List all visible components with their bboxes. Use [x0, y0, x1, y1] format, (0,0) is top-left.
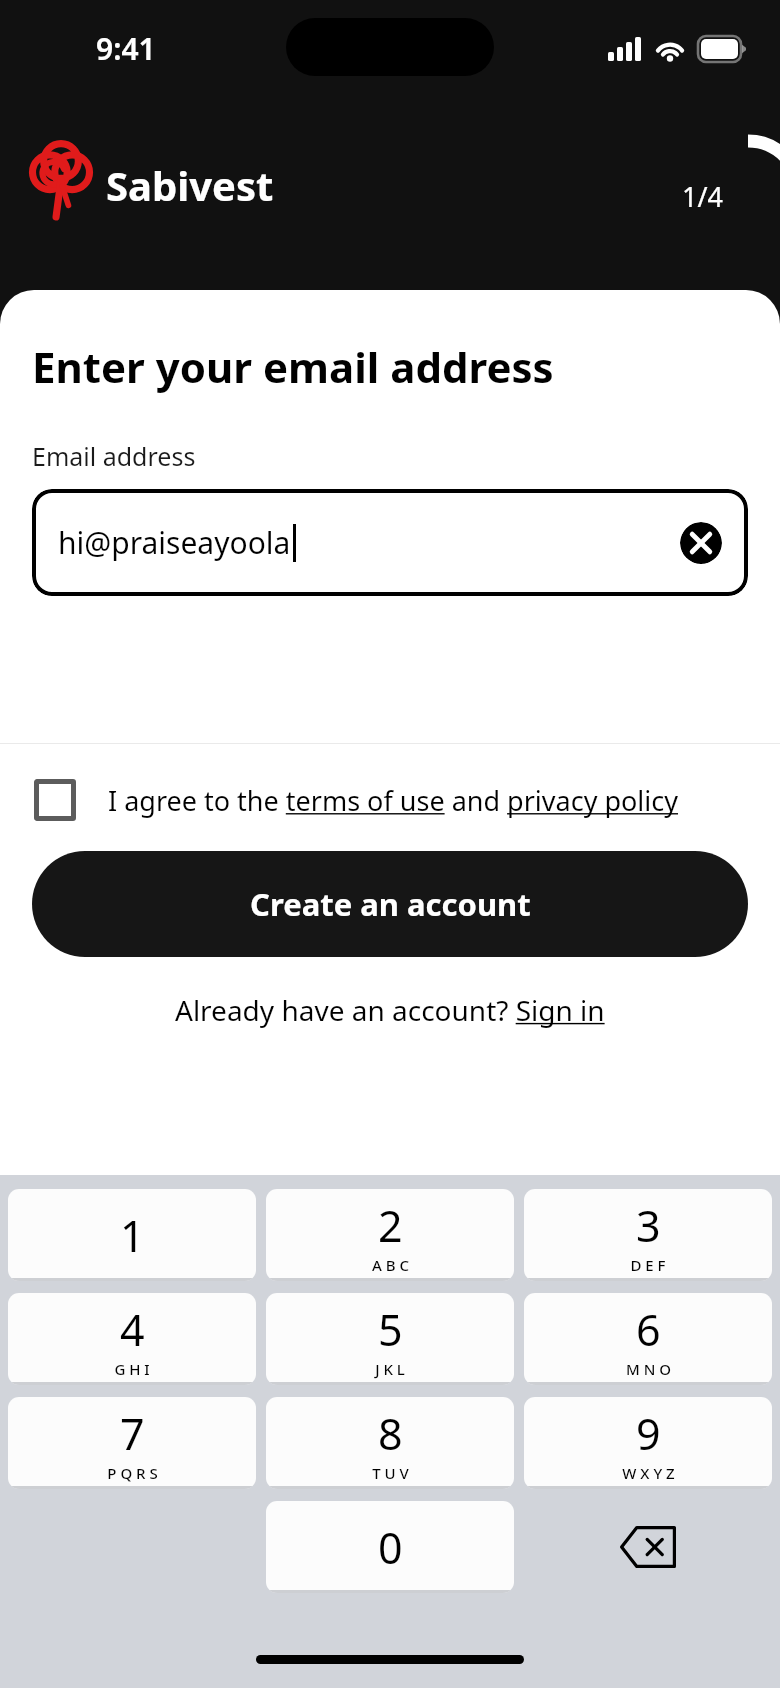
staticText: J K L	[375, 1359, 405, 1379]
button[interactable]: 5	[266, 1293, 514, 1385]
button[interactable]: 9	[524, 1397, 772, 1489]
button[interactable]: Clear text	[680, 522, 722, 564]
button[interactable]: Agree to terms	[0, 773, 780, 827]
staticText: D E F	[630, 1255, 666, 1275]
staticText: 2	[378, 1196, 403, 1255]
staticText: M N O	[626, 1359, 671, 1379]
button[interactable]: hi@praiseayoola	[32, 489, 748, 596]
staticText: 1	[120, 1206, 145, 1265]
staticText: 9	[636, 1404, 661, 1463]
button[interactable]: 3	[524, 1189, 772, 1281]
button[interactable]: 1	[8, 1189, 256, 1281]
staticText: I agree to the terms of use and privacy …	[108, 782, 679, 819]
other: Agree to terms	[34, 779, 76, 821]
staticText: T U V	[372, 1463, 409, 1483]
other: Step 1 of 4	[660, 130, 780, 240]
staticText: 5	[378, 1300, 403, 1359]
button[interactable]: 4	[8, 1293, 256, 1385]
staticText: A B C	[372, 1255, 409, 1275]
staticText: 1/4	[682, 178, 723, 215]
staticText: Already have an account? Sign in	[175, 991, 605, 1029]
staticText: W X Y Z	[622, 1463, 675, 1483]
button[interactable]: 8	[266, 1397, 514, 1489]
staticText: 8	[378, 1404, 403, 1463]
staticText: G H I	[114, 1359, 150, 1379]
staticText: P Q R S	[107, 1463, 158, 1483]
button[interactable]: 7	[8, 1397, 256, 1489]
staticText: 7	[120, 1404, 145, 1463]
staticText: 4	[120, 1300, 145, 1359]
button[interactable]: 2	[266, 1189, 514, 1281]
staticText: Enter your email address	[32, 338, 554, 395]
staticText: Create an account	[250, 883, 531, 925]
staticText: 9:41	[96, 28, 156, 69]
staticText: Email address	[32, 439, 196, 473]
button[interactable]: Backspace	[524, 1501, 772, 1593]
staticText: Sabivest	[106, 158, 274, 212]
staticText: 6	[636, 1300, 661, 1359]
button[interactable]: 0	[266, 1501, 514, 1593]
button[interactable]: Already have an account? Sign in	[0, 987, 780, 1033]
button[interactable]: Create an account	[32, 851, 748, 957]
staticText: hi@praiseayoola	[58, 522, 291, 563]
staticText: 0	[378, 1518, 403, 1577]
button[interactable]: 6	[524, 1293, 772, 1385]
staticText: 3	[636, 1196, 661, 1255]
